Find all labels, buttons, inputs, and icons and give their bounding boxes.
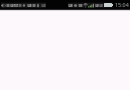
button[interactable]: More notifications (41, 0, 46, 9)
button[interactable]: Alarm (68, 0, 73, 9)
button[interactable]: Mobile signal (88, 0, 94, 9)
button[interactable]: SIM 1 signal (95, 0, 99, 9)
button[interactable]: Notification (10, 0, 14, 9)
button[interactable]: Wi-Fi (83, 0, 88, 9)
button[interactable]: SIM 2 signal (99, 0, 103, 9)
button[interactable]: Download (36, 0, 40, 9)
button[interactable]: Email (14, 0, 18, 9)
button[interactable]: Camera (22, 0, 26, 9)
other: Battery (104, 3, 112, 7)
button[interactable]: Messages (6, 0, 10, 9)
button[interactable]: Calendar (18, 0, 22, 9)
button[interactable]: Screenshot (27, 0, 32, 9)
button[interactable]: Silent mode (1, 0, 6, 9)
button[interactable]: Headset (73, 0, 78, 9)
button[interactable]: Bluetooth (78, 0, 83, 9)
button[interactable]: Sync (32, 0, 36, 9)
staticText: 15:04 (115, 1, 129, 8)
